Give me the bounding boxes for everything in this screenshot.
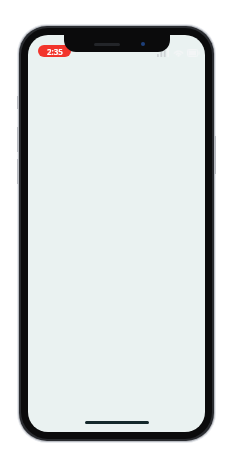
button[interactable]: Home <box>85 421 149 424</box>
button[interactable]: 2:35 <box>38 45 71 57</box>
other: Signal, Wi-Fi and battery status <box>157 46 200 57</box>
staticText: 2:35 <box>47 46 63 57</box>
